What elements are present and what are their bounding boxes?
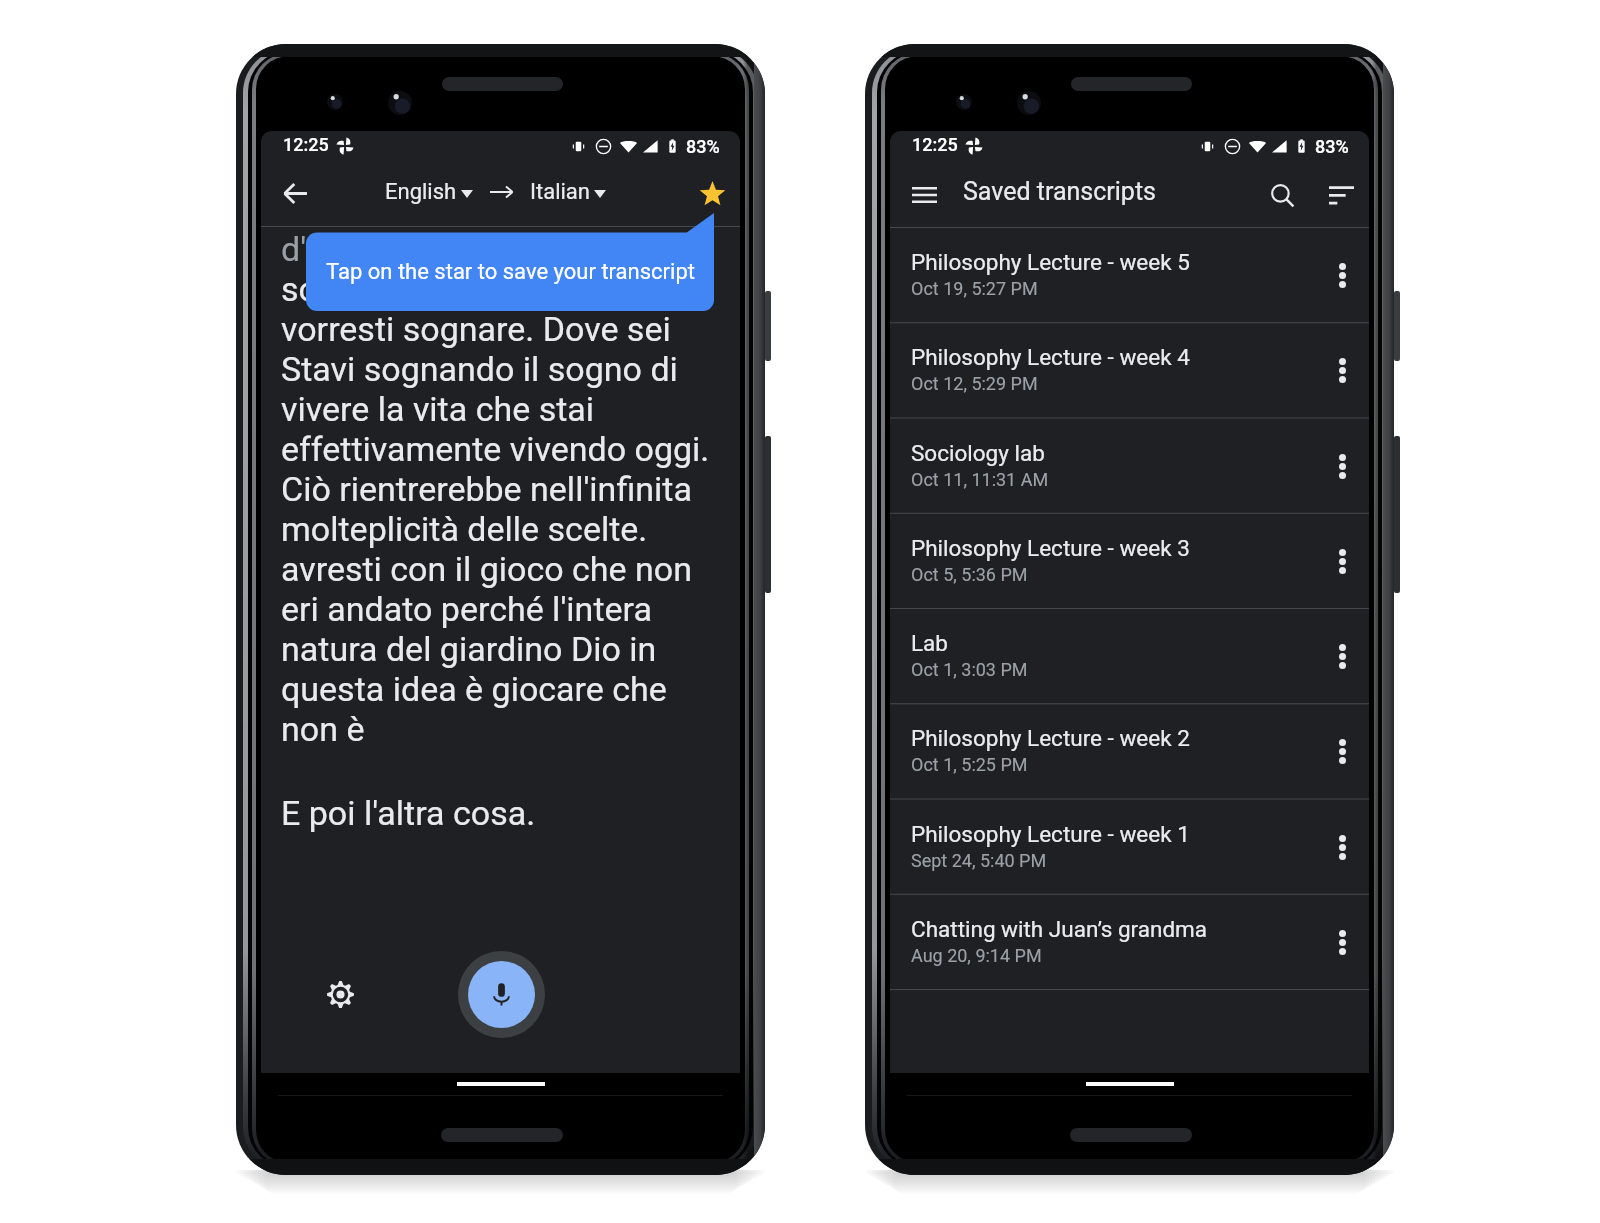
staticText: Sociology lab — [911, 440, 1045, 466]
staticText: Philosophy Lecture - week 5 — [911, 249, 1190, 275]
staticText: natura del giardino Dio in — [281, 629, 657, 669]
staticText: Chatting with Juan’s grandma — [911, 916, 1208, 942]
staticText: eri andato perché l'intera — [281, 589, 652, 629]
staticText: Oct 12, 5:29 PM — [911, 373, 1038, 394]
button[interactable]: Back — [277, 175, 313, 211]
button[interactable]: More options — [1321, 349, 1363, 391]
staticText: Philosophy Lecture - week 3 — [911, 535, 1190, 561]
button[interactable]: More options — [1321, 826, 1363, 868]
staticText: Italian — [530, 179, 590, 205]
button[interactable]: Philosophy Lecture - week 3 — [890, 513, 1369, 608]
staticText: Sept 24, 5:40 PM — [911, 850, 1047, 871]
button[interactable]: Search — [1261, 174, 1303, 216]
staticText: molteplicità delle scelte. — [281, 509, 648, 549]
staticText: Philosophy Lecture - week 1 — [911, 821, 1190, 847]
staticText: non è — [281, 709, 365, 749]
staticText: Lab — [911, 630, 948, 656]
button[interactable]: Settings — [317, 971, 363, 1017]
button[interactable]: Philosophy Lecture - week 4 — [890, 322, 1369, 417]
staticText: Ciò rientrerebbe nell'infinita — [281, 469, 692, 509]
button[interactable]: More options — [1321, 921, 1363, 963]
staticText: E poi l'altra cosa. — [281, 793, 536, 833]
button[interactable]: More options — [1321, 730, 1363, 772]
button[interactable]: More options — [1321, 540, 1363, 582]
staticText: 12:25 — [283, 134, 329, 155]
staticText: Philosophy Lecture - week 2 — [911, 725, 1190, 751]
staticText: so — [281, 269, 318, 309]
button[interactable]: Sort — [1320, 174, 1362, 216]
staticText: effettivamente vivendo oggi. — [281, 429, 710, 469]
staticText: Stavi sognando il sogno di — [281, 349, 678, 389]
button[interactable]: More options — [1321, 635, 1363, 677]
staticText: vorresti sognare. Dove sei — [281, 309, 671, 349]
staticText: Oct 11, 11:31 AM — [911, 469, 1049, 490]
button[interactable]: English — [383, 175, 475, 209]
staticText: English — [385, 179, 457, 205]
staticText: 83% — [686, 136, 720, 157]
staticText: questa idea è giocare che — [281, 669, 667, 709]
button[interactable]: Italian — [528, 175, 608, 209]
button[interactable]: Sociology lab — [890, 418, 1369, 513]
button[interactable]: Philosophy Lecture - week 2 — [890, 703, 1369, 798]
staticText: Tap on the star to save your transcript — [326, 259, 695, 285]
staticText: Oct 5, 5:36 PM — [911, 564, 1028, 585]
staticText: Oct 1, 5:25 PM — [911, 754, 1028, 775]
staticText: vivere la vita che stai — [281, 389, 595, 429]
button[interactable]: More options — [1321, 445, 1363, 487]
staticText: Oct 19, 5:27 PM — [911, 278, 1038, 299]
staticText: avresti con il gioco che non — [281, 549, 692, 589]
button[interactable]: Save transcript — [694, 175, 730, 211]
button[interactable]: Open navigation menu — [906, 177, 942, 213]
staticText: Saved transcripts — [963, 177, 1156, 206]
staticText: d' — [281, 229, 307, 269]
button[interactable]: Philosophy Lecture - week 5 — [890, 227, 1369, 322]
button[interactable]: Philosophy Lecture - week 1 — [890, 799, 1369, 894]
staticText: Oct 1, 3:03 PM — [911, 659, 1028, 680]
staticText: 83% — [1315, 136, 1349, 157]
button[interactable]: Chatting with Juan’s grandma — [890, 894, 1369, 989]
button[interactable]: Lab — [890, 608, 1369, 703]
staticText: 12:25 — [912, 134, 958, 155]
button[interactable]: More options — [1321, 254, 1363, 296]
button[interactable]: Microphone — [458, 951, 545, 1038]
staticText: Philosophy Lecture - week 4 — [911, 344, 1190, 370]
staticText: Aug 20, 9:14 PM — [911, 945, 1042, 966]
